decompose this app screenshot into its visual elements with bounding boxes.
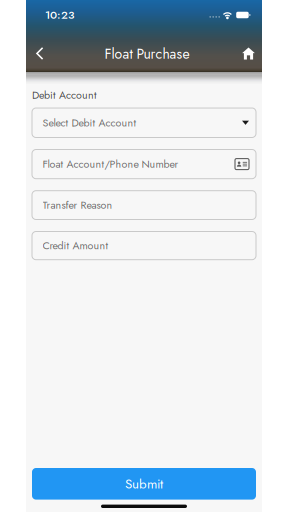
staticText: Select Debit Account <box>42 115 136 130</box>
button[interactable]: Submit <box>32 468 256 500</box>
button[interactable]: Credit Amount <box>32 231 256 260</box>
button[interactable]: Select Debit Account <box>32 108 256 137</box>
staticText: Float Account/Phone Number <box>42 156 178 172</box>
button[interactable]: Back <box>26 38 52 68</box>
staticText: Transfer Reason <box>42 197 112 213</box>
button[interactable]: Float Account/Phone Number <box>32 149 256 179</box>
staticText: Debit Account <box>32 87 97 103</box>
button[interactable]: Transfer Reason <box>32 191 256 219</box>
staticText: Submit <box>125 474 163 493</box>
staticText: Float Purchase <box>104 44 189 64</box>
staticText: 10:23 <box>45 6 75 23</box>
staticText: Credit Amount <box>42 238 108 253</box>
button[interactable]: Home <box>235 38 261 68</box>
